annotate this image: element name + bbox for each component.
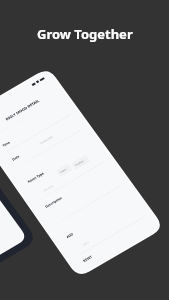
button[interactable]: Grow Together bbox=[37, 25, 133, 43]
